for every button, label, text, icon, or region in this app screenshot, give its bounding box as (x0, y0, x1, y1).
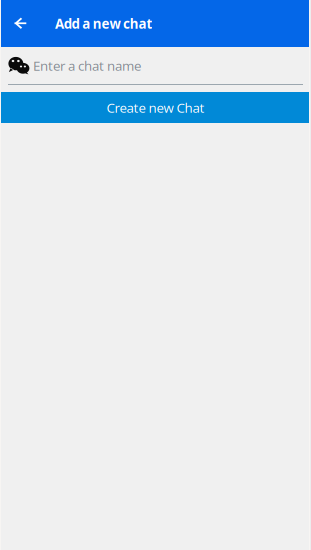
staticText: Create new Chat (106, 98, 204, 117)
button[interactable]: Back (0, 0, 41, 47)
staticText: Enter a chat name (33, 56, 141, 75)
button[interactable]: Create new Chat (1, 92, 310, 123)
staticText: Add a new chat (55, 14, 152, 33)
button[interactable]: Enter a chat name (8, 47, 303, 85)
